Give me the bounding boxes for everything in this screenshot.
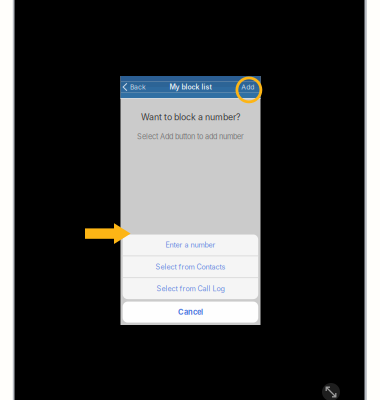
staticText: Select from Call Log [156, 284, 224, 293]
button[interactable]: Enter a number [123, 234, 258, 255]
staticText: Select Add button to add number [137, 132, 244, 141]
staticText: Cancel [178, 308, 203, 317]
button[interactable]: Select from Contacts [123, 256, 258, 277]
staticText: My block list [169, 83, 211, 91]
staticText: Select from Contacts [155, 262, 225, 271]
staticText: Want to block a number? [141, 112, 240, 122]
staticText: Add [241, 83, 254, 91]
button[interactable]: Cancel [123, 302, 258, 323]
button[interactable]: Expand [322, 383, 340, 400]
staticText: Back [130, 83, 146, 91]
button[interactable]: Back [120, 78, 150, 96]
button[interactable]: Select from Call Log [123, 278, 258, 299]
button[interactable]: Add [238, 78, 257, 96]
staticText: Enter a number [165, 241, 215, 249]
